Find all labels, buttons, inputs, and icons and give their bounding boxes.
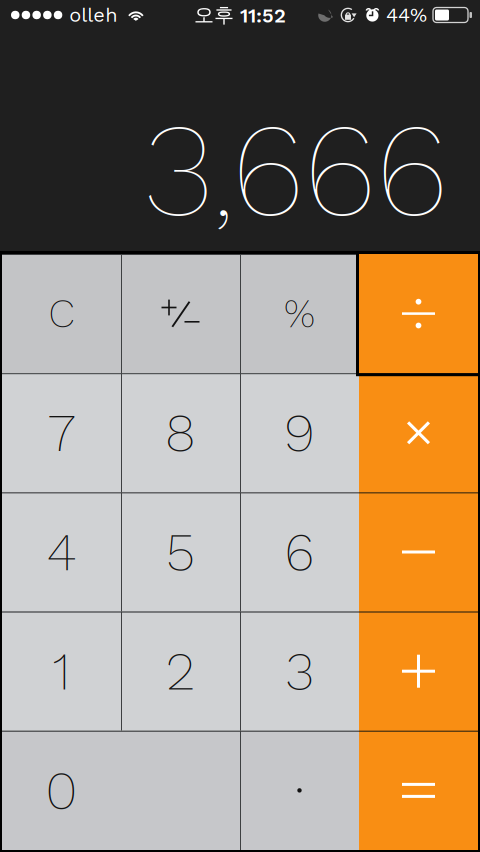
button[interactable]: Equals: [359, 731, 478, 850]
button[interactable]: Plus: [359, 612, 478, 731]
staticText: 4: [46, 521, 76, 583]
staticText: 6: [284, 521, 314, 583]
staticText: 3,666: [144, 92, 448, 247]
button[interactable]: [121, 373, 240, 492]
button[interactable]: [240, 612, 359, 731]
button[interactable]: Minus: [359, 492, 478, 612]
staticText: 44%: [386, 3, 427, 27]
button[interactable]: [240, 254, 359, 373]
staticText: C: [48, 290, 74, 337]
staticText: 8: [165, 401, 196, 464]
staticText: %: [284, 290, 315, 337]
button[interactable]: [2, 492, 121, 612]
button[interactable]: [2, 254, 121, 373]
button[interactable]: [2, 373, 121, 492]
staticText: 9: [284, 401, 315, 464]
staticText: 2: [166, 640, 195, 702]
staticText: 0: [45, 759, 77, 822]
button[interactable]: [2, 731, 240, 850]
button[interactable]: [240, 373, 359, 492]
staticText: 5: [166, 521, 195, 583]
staticText: olleh: [69, 3, 117, 27]
staticText: 1: [52, 640, 70, 702]
staticText: 오후 11:52: [194, 2, 286, 28]
button[interactable]: [121, 492, 240, 612]
button[interactable]: [240, 492, 359, 612]
button[interactable]: Multiply: [359, 373, 478, 492]
button[interactable]: [121, 612, 240, 731]
button[interactable]: Divide: [359, 254, 478, 373]
staticText: 7: [48, 401, 75, 464]
staticText: 3: [285, 640, 313, 702]
button[interactable]: Decimal point: [240, 731, 359, 850]
button[interactable]: Plus or minus: [121, 254, 240, 373]
button[interactable]: [2, 612, 121, 731]
